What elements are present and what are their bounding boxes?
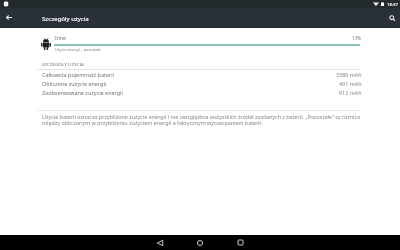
staticText: Obliczone zużycie energii	[42, 80, 107, 87]
button[interactable]: Back	[140, 235, 180, 250]
staticText: 3380 mAh	[336, 71, 362, 78]
staticText: SZCZEGÓŁY UŻYCIA	[42, 61, 85, 67]
button[interactable]: Inne	[37, 32, 360, 55]
staticText: Całkowita pojemność baterii	[42, 71, 115, 78]
staticText: Użycie baterii oznacza przybliżone zużyc…	[42, 113, 363, 126]
button[interactable]: Całkowita pojemność baterii	[37, 69, 360, 78]
staticText: 491 mAh	[339, 80, 362, 87]
staticText: Inne	[55, 35, 66, 42]
staticText: 13%	[352, 35, 362, 41]
staticText: 18:37	[387, 1, 398, 7]
button[interactable]: Recent apps	[220, 235, 260, 250]
staticText: 912 mAh	[339, 89, 362, 96]
staticText: Zaobserwowane zużycie energii	[42, 89, 123, 96]
button[interactable]: Search	[383, 8, 400, 28]
staticText: Szczegóły użycia	[42, 14, 89, 22]
button[interactable]: Back	[0, 7, 17, 27]
button[interactable]: Obliczone zużycie energii	[37, 78, 360, 87]
staticText: Użycie energii – pozostałe	[55, 47, 101, 52]
button[interactable]: Home	[180, 235, 220, 250]
button[interactable]: Zaobserwowane zużycie energii	[37, 87, 360, 96]
